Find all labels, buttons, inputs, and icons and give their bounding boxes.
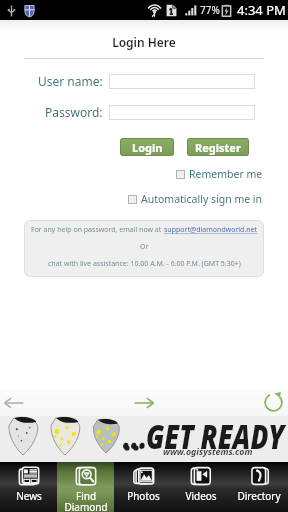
button[interactable]: Forward [133,392,155,414]
staticText: Login Here [0,34,288,50]
staticText: Photos [127,489,160,503]
button[interactable]: User name: [109,74,255,89]
button[interactable]: Refresh [263,392,284,413]
staticText: Login [132,140,163,155]
staticText: ...GET READY [123,414,285,459]
button[interactable]: support@diamondworld.net [164,225,258,235]
button[interactable]: Checkbox [128,195,137,204]
staticText: chat with live assistance: 10.00 A.M. - … [48,259,241,269]
staticText: Directory [237,489,281,503]
staticText: Register [195,140,241,155]
staticText: Remember me [189,167,263,181]
button[interactable]: Directory [230,462,288,512]
button[interactable]: Videos [172,462,230,512]
staticText: Videos [185,489,217,503]
button[interactable]: Login [120,138,174,156]
staticText: For any help on password, email now at [31,225,164,235]
staticText: Find Diamond [64,489,108,512]
button[interactable]: Find Diamond [57,462,114,512]
staticText: Or [140,242,149,252]
button[interactable]: News [0,462,57,512]
staticText: www.ogisystems.com [163,446,253,457]
staticText: News [16,489,42,503]
button[interactable]: Password: [109,105,255,120]
button[interactable]: Back [3,392,25,414]
button[interactable]: Photos [114,462,172,512]
staticText: Password: [45,104,103,120]
staticText: 77% [200,3,220,17]
staticText: 4:34 PM [237,1,286,19]
button[interactable]: Checkbox [176,170,185,179]
button[interactable]: Register [187,138,249,156]
staticText: Automatically sign me in [141,192,263,206]
staticText: User name: [38,73,103,89]
